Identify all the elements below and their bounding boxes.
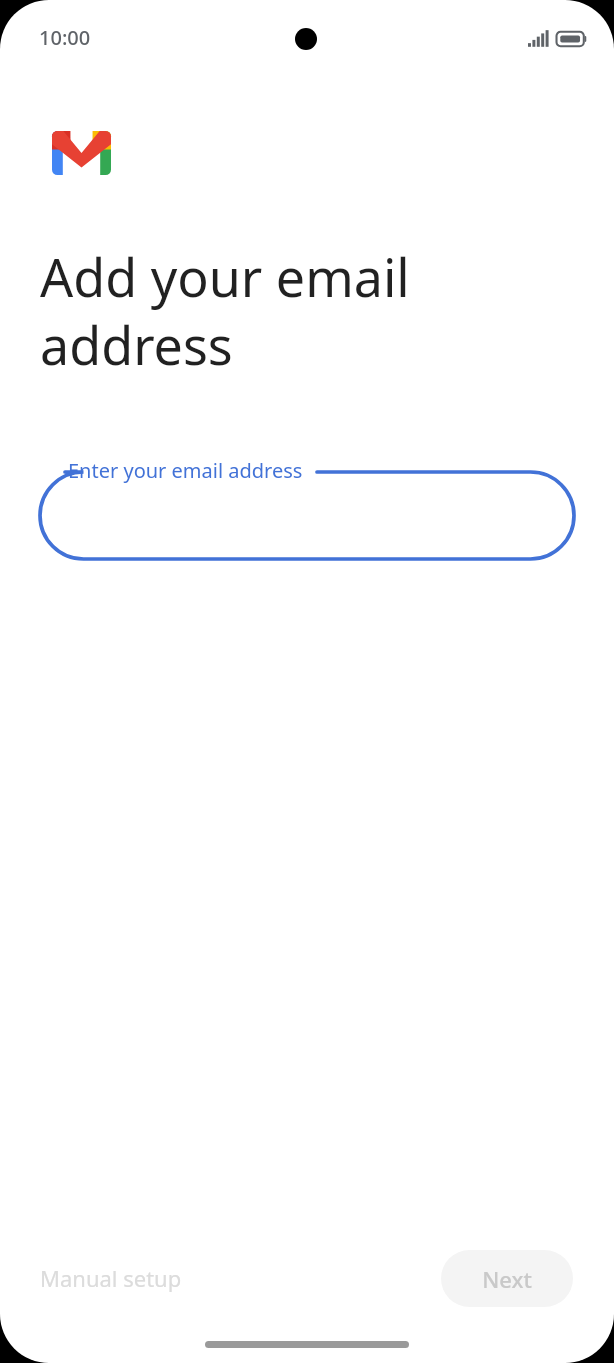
staticText: Manual setup bbox=[40, 1263, 182, 1293]
staticText: Add your email address bbox=[40, 241, 614, 380]
other: Gmail logo bbox=[52, 131, 111, 175]
staticText: Enter your email address bbox=[68, 457, 303, 484]
button[interactable]: Manual setup bbox=[24, 1251, 198, 1305]
staticText: Next bbox=[482, 1264, 532, 1294]
button[interactable]: Next bbox=[441, 1250, 573, 1307]
button[interactable]: Enter your email address bbox=[40, 452, 574, 562]
staticText: 10:00 bbox=[39, 24, 91, 51]
